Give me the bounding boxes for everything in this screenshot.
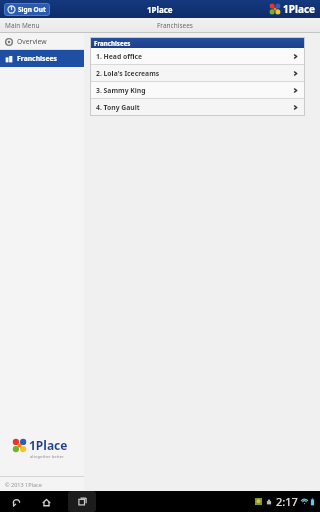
staticText: 2:17 (276, 494, 298, 509)
button[interactable]: Home (38, 494, 54, 510)
button[interactable]: Back (8, 494, 24, 510)
button[interactable]: Franchisees (0, 50, 84, 67)
button[interactable]: 2. Lola's Icecreams (90, 65, 305, 82)
staticText: 2. Lola's Icecreams (96, 69, 160, 78)
button[interactable]: Overview (0, 33, 84, 50)
staticText: Franchisees (94, 39, 131, 47)
staticText: Sign Out (18, 5, 46, 14)
staticText: © 2013 1Place (5, 481, 42, 488)
staticText: 1Place (147, 4, 173, 15)
button[interactable]: Sign Out (4, 3, 50, 16)
staticText: Franchisees (157, 21, 193, 30)
button[interactable]: 1Place home (269, 2, 316, 16)
button[interactable]: 1. Head office (90, 48, 305, 65)
staticText: Overview (17, 37, 47, 46)
staticText: 1. Head office (96, 52, 143, 61)
staticText: altogether better (30, 454, 64, 460)
staticText: 4. Tony Gault (96, 103, 140, 112)
staticText: 3. Sammy King (96, 86, 146, 95)
button[interactable]: Recent apps (68, 491, 96, 512)
button[interactable]: 3. Sammy King (90, 82, 305, 99)
staticText: 1Place (283, 2, 316, 16)
staticText: Franchisees (17, 54, 58, 63)
button[interactable]: 4. Tony Gault (90, 99, 305, 116)
staticText: 1Place (29, 437, 68, 453)
staticText: Main Menu (5, 21, 40, 30)
